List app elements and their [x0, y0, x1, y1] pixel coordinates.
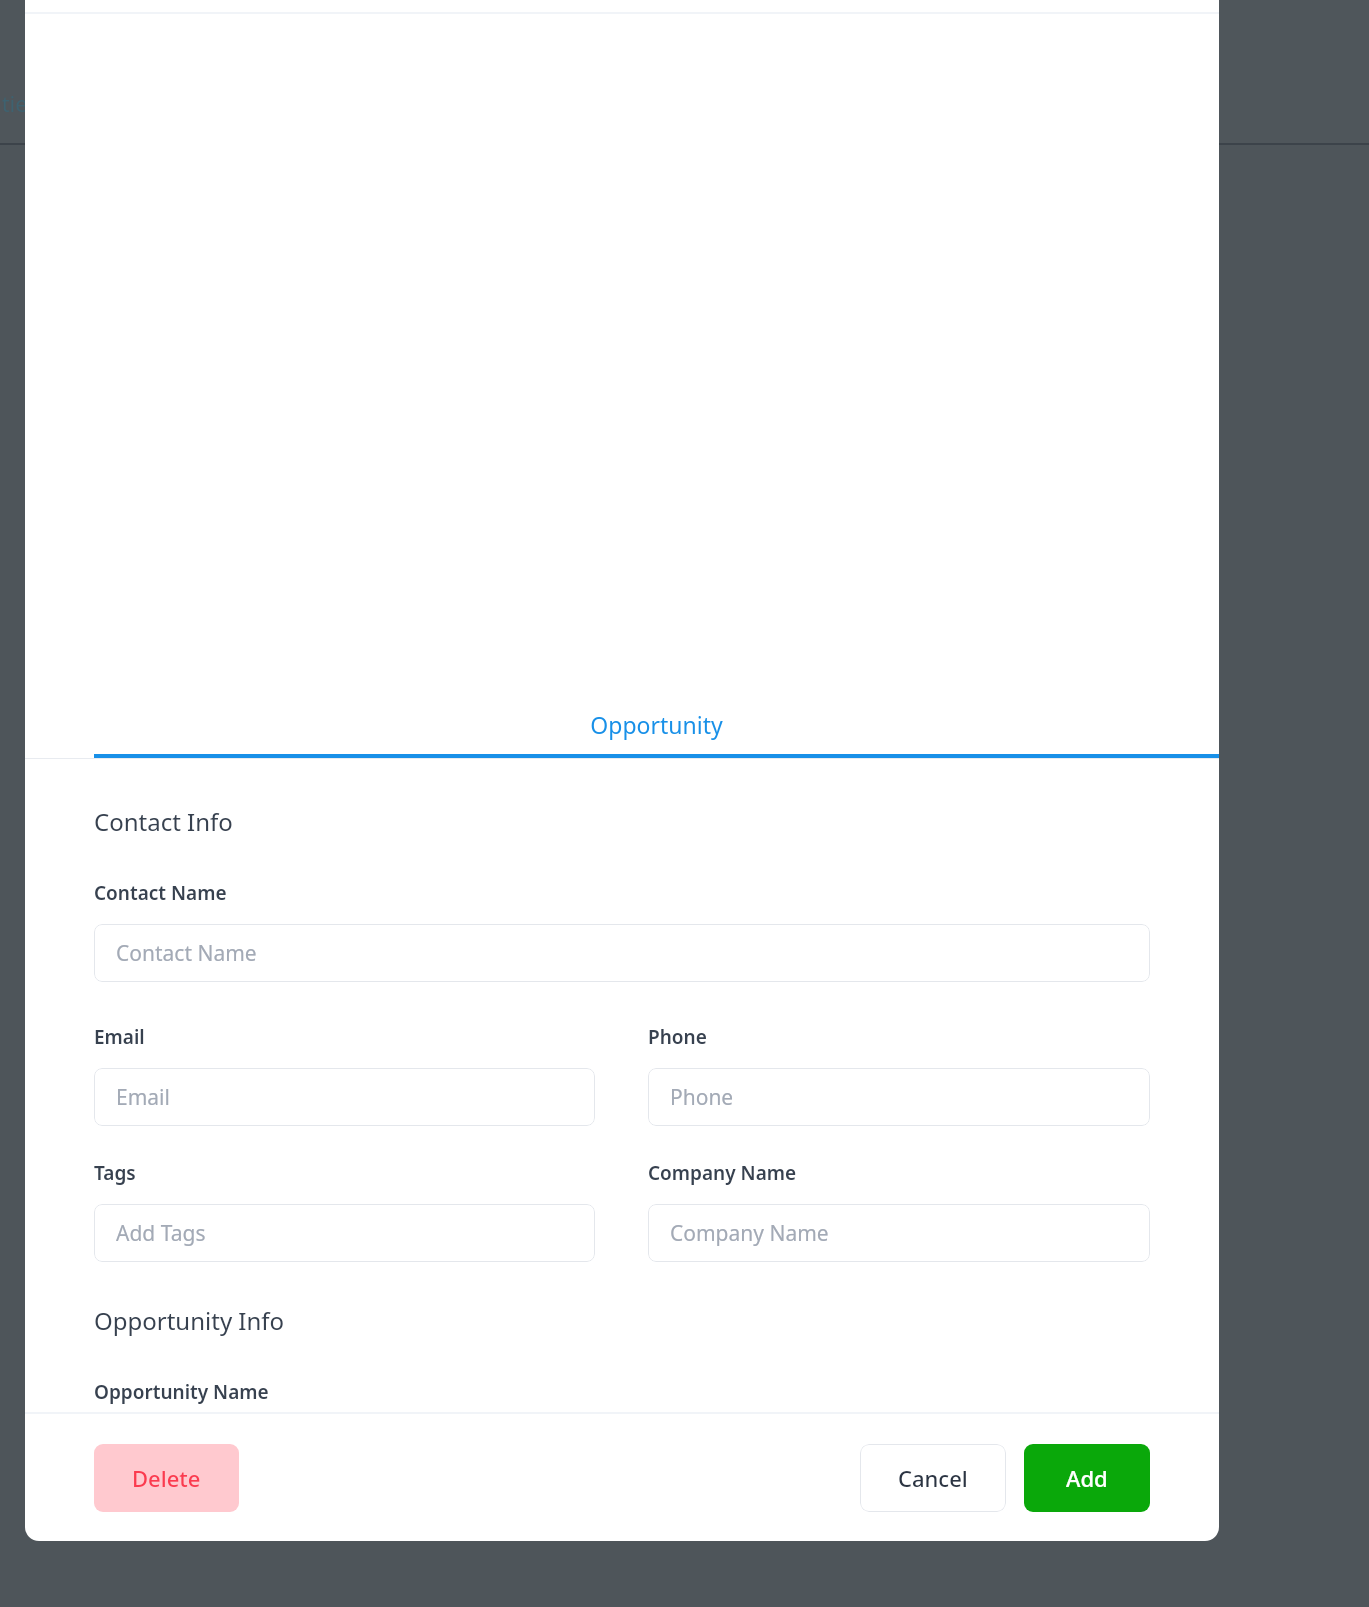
staticText: Contact Name	[116, 939, 257, 968]
staticText: Phone	[670, 1083, 734, 1112]
staticText: Phone	[648, 1024, 707, 1050]
button[interactable]: Phone	[648, 1068, 1150, 1126]
button[interactable]: Opportunity	[94, 665, 1219, 758]
staticText: Company Name	[648, 1160, 797, 1186]
staticText: Cancel	[898, 1463, 968, 1493]
button[interactable]: Cancel	[860, 1444, 1006, 1512]
button[interactable]: Add	[1024, 1444, 1150, 1512]
staticText: Opportunity	[590, 709, 723, 740]
staticText: Email	[116, 1083, 170, 1112]
button[interactable]: Email	[94, 1068, 595, 1126]
button[interactable]: Delete	[94, 1444, 239, 1512]
button[interactable]: Contact Name	[94, 924, 1150, 982]
staticText: Add Tags	[116, 1219, 206, 1248]
staticText: itie	[0, 88, 28, 118]
staticText: Delete	[132, 1463, 201, 1493]
staticText: Opportunity Name	[94, 1379, 269, 1405]
staticText: Opportunity Info	[94, 1304, 285, 1337]
staticText: Tags	[94, 1160, 136, 1186]
staticText: Company Name	[670, 1219, 829, 1248]
button[interactable]: Company Name	[648, 1204, 1150, 1262]
staticText: Contact Info	[94, 805, 233, 838]
staticText: Email	[94, 1024, 145, 1050]
staticText: Add	[1066, 1463, 1108, 1493]
button[interactable]: Add Tags	[94, 1204, 595, 1262]
staticText: Contact Name	[94, 880, 227, 906]
